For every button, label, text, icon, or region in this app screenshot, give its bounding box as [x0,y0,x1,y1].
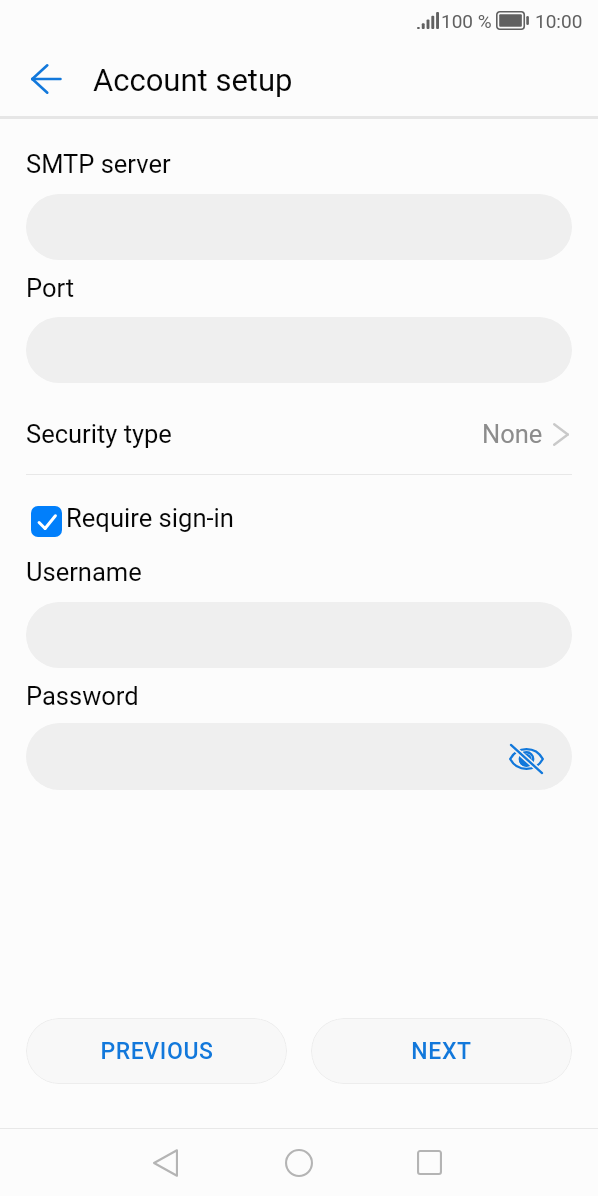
staticText: Require sign-in [66,503,234,533]
button[interactable]: PREVIOUS [26,1018,287,1084]
button[interactable]: Back [20,53,72,105]
staticText: Port [26,273,75,303]
staticText: PREVIOUS [100,1038,214,1065]
button[interactable]: NEXT [311,1018,572,1084]
staticText: SMTP server [26,149,171,179]
staticText: Password [26,681,139,711]
button[interactable]: Require sign-in [26,500,246,544]
button[interactable]: Recent apps [402,1129,456,1196]
staticText: NEXT [411,1038,472,1065]
staticText: Account setup [93,62,293,98]
staticText: 10:00 [535,10,583,32]
staticText: None [482,419,543,449]
button[interactable]: Show password [504,737,548,781]
button[interactable]: Security type [0,415,598,453]
staticText: Username [26,557,142,587]
staticText: 100 % [441,10,492,32]
staticText: Security type [26,419,172,449]
button[interactable]: Home [272,1129,326,1196]
button[interactable]: Back [138,1129,192,1196]
button[interactable]: Show password [26,723,572,790]
